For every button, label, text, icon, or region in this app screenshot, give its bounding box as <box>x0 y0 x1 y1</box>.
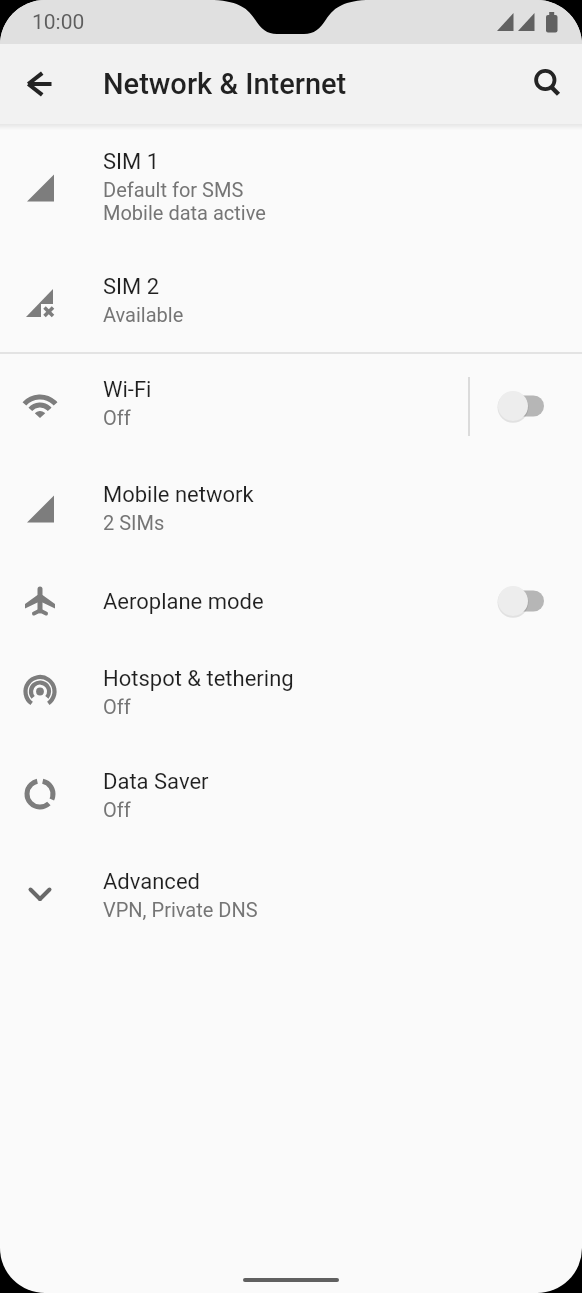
button[interactable]: SIM 2 <box>0 254 582 352</box>
staticText: 10:00 <box>32 10 85 35</box>
staticText: VPN, Private DNS <box>103 898 258 921</box>
staticText: Off <box>103 695 131 718</box>
button[interactable]: Wi-Fi <box>0 354 582 458</box>
button[interactable] <box>22 66 58 102</box>
staticText: Off <box>103 406 131 429</box>
staticText: Hotspot & tethering <box>103 666 294 692</box>
button[interactable]: Hotspot & tethering <box>0 640 582 744</box>
button[interactable] <box>500 390 544 422</box>
staticText: Advanced <box>103 869 200 895</box>
staticText: SIM 2 <box>103 274 160 300</box>
staticText: Mobile network <box>103 482 254 508</box>
staticText: Network & Internet <box>103 67 347 101</box>
staticText: Off <box>103 798 131 821</box>
staticText: Mobile data active <box>103 201 266 224</box>
button[interactable] <box>500 585 544 617</box>
button[interactable]: SIM 1 <box>0 124 582 254</box>
staticText: 2 SIMs <box>103 511 165 534</box>
button[interactable]: Aeroplane mode <box>0 562 582 640</box>
button[interactable]: Advanced <box>0 844 582 944</box>
button[interactable]: Mobile network <box>0 458 582 562</box>
staticText: Available <box>103 303 184 326</box>
staticText: Wi-Fi <box>103 377 152 403</box>
staticText: Data Saver <box>103 769 209 795</box>
staticText: Default for SMS <box>103 178 244 201</box>
staticText: SIM 1 <box>103 149 160 175</box>
button[interactable]: Data Saver <box>0 744 582 844</box>
staticText: Aeroplane mode <box>103 589 264 615</box>
button[interactable] <box>530 66 566 102</box>
